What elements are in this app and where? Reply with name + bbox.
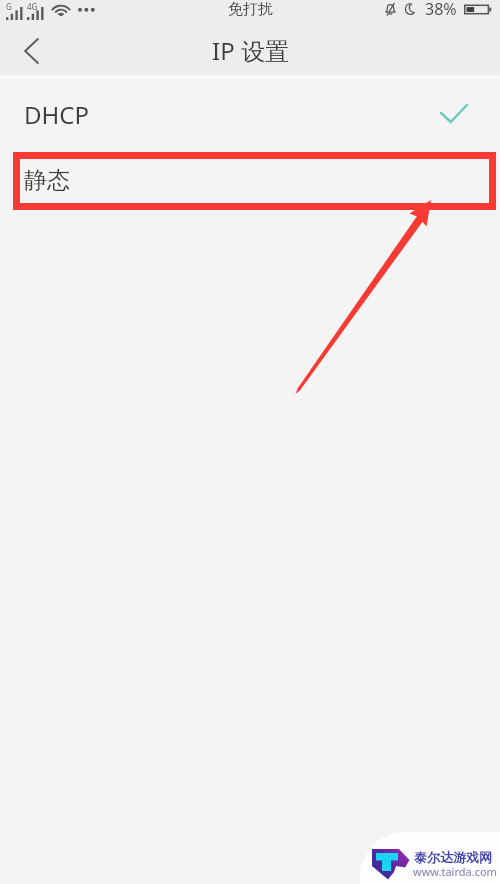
staticText: www.tairda.com xyxy=(413,864,497,879)
staticText: G xyxy=(6,1,12,12)
button[interactable]: 静态 xyxy=(0,150,500,210)
staticText: 免打扰 xyxy=(228,0,273,19)
staticText: IP 设置 xyxy=(212,34,289,67)
button[interactable]: Back xyxy=(0,26,58,75)
staticText: 泰尔达游戏网 xyxy=(414,849,492,865)
staticText: 4G xyxy=(27,1,38,12)
staticText: 38% xyxy=(425,0,457,20)
button[interactable]: DHCP xyxy=(0,79,500,150)
staticText: DHCP xyxy=(24,98,89,131)
staticText: 静态 xyxy=(24,166,70,195)
